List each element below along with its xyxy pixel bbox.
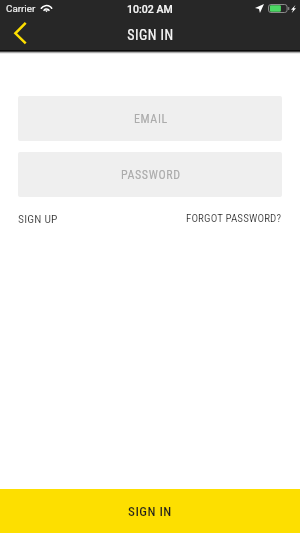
staticText: EMAIL: [134, 112, 168, 126]
button[interactable]: EMAIL: [18, 96, 282, 141]
staticText: SIGN IN: [128, 504, 172, 519]
staticText: FORGOT PASSWORD?: [186, 212, 282, 225]
button[interactable]: FORGOT PASSWORD?: [186, 212, 282, 225]
button[interactable]: PASSWORD: [18, 152, 282, 197]
staticText: Carrier: [6, 3, 36, 14]
staticText: SIGN IN: [127, 27, 174, 43]
staticText: PASSWORD: [121, 168, 181, 182]
button[interactable]: SIGN IN: [0, 489, 300, 533]
staticText: 10:02 AM: [127, 3, 173, 15]
button[interactable]: Back: [0, 20, 40, 50]
staticText: SIGN UP: [18, 212, 58, 225]
button[interactable]: SIGN UP: [18, 212, 58, 225]
